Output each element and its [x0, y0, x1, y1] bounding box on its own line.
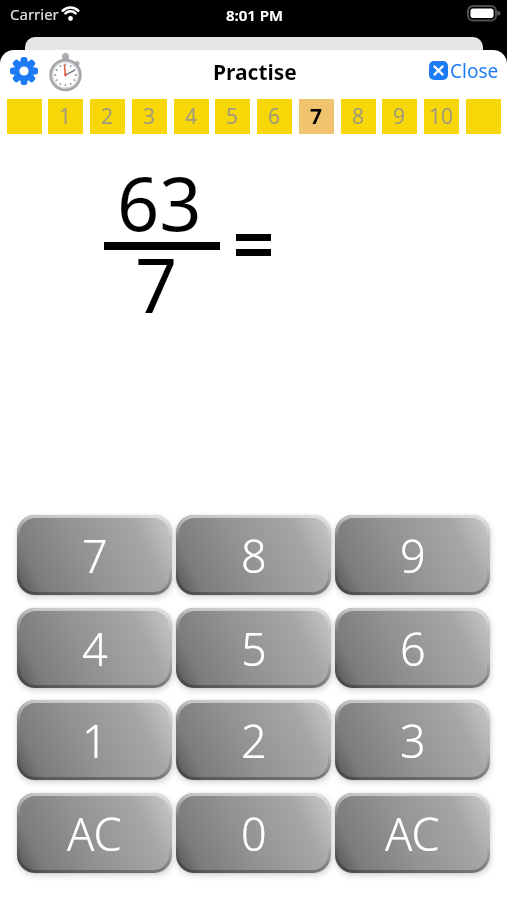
button[interactable]: 8 — [176, 515, 331, 595]
button[interactable]: 5 — [215, 99, 250, 134]
button[interactable]: 3 — [132, 99, 167, 134]
button[interactable]: 2 — [176, 700, 331, 780]
staticText: Practise — [213, 58, 297, 87]
button[interactable]: 10 — [424, 99, 459, 134]
button[interactable] — [10, 57, 38, 85]
staticText: 6 — [268, 102, 281, 131]
staticText: Close — [450, 58, 499, 83]
button[interactable]: 7 — [17, 515, 172, 595]
button[interactable]: Close — [426, 58, 506, 86]
staticText: 4 — [82, 618, 108, 679]
staticText: 7 — [310, 102, 323, 131]
button[interactable]: 5 — [176, 608, 331, 688]
staticText: AC — [67, 803, 122, 864]
button[interactable] — [49, 53, 83, 91]
staticText: 4 — [185, 102, 198, 131]
button[interactable]: 6 — [335, 608, 490, 688]
button[interactable]: 2 — [90, 99, 125, 134]
staticText: 1 — [82, 710, 108, 771]
button[interactable]: AC — [335, 793, 490, 873]
button[interactable]: 3 — [335, 700, 490, 780]
button[interactable]: 9 — [382, 99, 417, 134]
button[interactable]: 4 — [174, 99, 209, 134]
staticText: 7 — [82, 525, 108, 586]
staticText: 7 — [135, 234, 178, 335]
staticText: 1 — [59, 102, 72, 131]
button[interactable]: 6 — [257, 99, 292, 134]
button[interactable]: 1 — [17, 700, 172, 780]
button[interactable]: 9 — [335, 515, 490, 595]
button[interactable]: AC — [17, 793, 172, 873]
button[interactable]: 0 — [176, 793, 331, 873]
staticText: 2 — [101, 102, 114, 131]
staticText: Carrier — [10, 4, 59, 24]
staticText: AC — [385, 803, 440, 864]
button[interactable]: 8 — [341, 99, 376, 134]
button[interactable]: 1 — [48, 99, 83, 134]
staticText: 3 — [400, 710, 426, 771]
staticText: 6 — [400, 618, 426, 679]
staticText: 63 — [117, 152, 202, 253]
staticText: 0 — [241, 803, 267, 864]
staticText: 3 — [143, 102, 156, 131]
staticText: 5 — [226, 102, 239, 131]
staticText: 9 — [400, 525, 426, 586]
staticText: 8 — [352, 102, 365, 131]
staticText: 8:01 PM — [226, 5, 283, 25]
staticText: 5 — [241, 618, 267, 679]
button[interactable]: 7 — [299, 99, 334, 134]
staticText: 2 — [241, 710, 267, 771]
staticText: 9 — [393, 102, 406, 131]
staticText: 8 — [241, 525, 267, 586]
staticText: 10 — [429, 102, 454, 131]
button[interactable]: 4 — [17, 608, 172, 688]
